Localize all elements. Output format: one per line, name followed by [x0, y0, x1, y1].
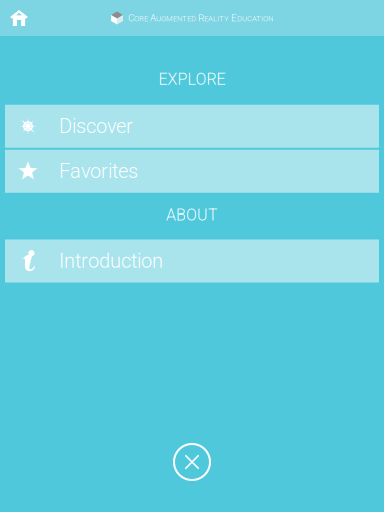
- staticText: DUCATION: [237, 14, 273, 23]
- staticText: E: [231, 12, 237, 24]
- staticText: A: [150, 12, 156, 24]
- button[interactable]: Home: [0, 0, 38, 36]
- staticText: R: [198, 12, 204, 24]
- staticText: ABOUT: [166, 206, 218, 225]
- staticText: Introduction: [59, 249, 163, 273]
- staticText: Discover: [59, 114, 133, 138]
- button[interactable]: Introduction: [5, 239, 379, 282]
- button[interactable]: Close: [163, 433, 221, 491]
- staticText: EXPLORE: [158, 70, 225, 89]
- button[interactable]: Favorites: [5, 150, 379, 193]
- staticText: UGMENTED: [156, 14, 198, 23]
- staticText: ORE: [134, 14, 150, 23]
- button[interactable]: Discover: [5, 105, 379, 148]
- staticText: EALITY: [204, 14, 231, 23]
- staticText: C: [128, 12, 134, 24]
- staticText: Favorites: [59, 159, 138, 183]
